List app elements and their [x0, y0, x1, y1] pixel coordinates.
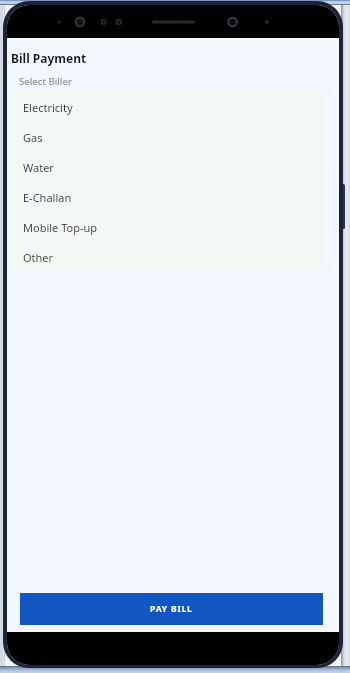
- button[interactable]: Gas: [9, 120, 323, 150]
- staticText: E-Challan: [23, 190, 72, 205]
- button[interactable]: Water: [9, 150, 323, 180]
- button[interactable]: PAY BILL: [20, 593, 323, 625]
- staticText: PAY BILL: [150, 603, 193, 615]
- staticText: Other: [23, 250, 54, 265]
- staticText: Water: [23, 160, 54, 175]
- staticText: Gas: [23, 130, 43, 145]
- button[interactable]: Mobile Top-up: [9, 210, 323, 240]
- staticText: Electricity: [23, 100, 73, 115]
- button[interactable]: Other: [9, 240, 323, 270]
- button[interactable]: E-Challan: [9, 180, 323, 210]
- staticText: Mobile Top-up: [23, 220, 98, 235]
- staticText: Bill Payment: [11, 50, 87, 66]
- staticText: Select Biller: [19, 75, 72, 88]
- button[interactable]: Electricity: [9, 90, 323, 120]
